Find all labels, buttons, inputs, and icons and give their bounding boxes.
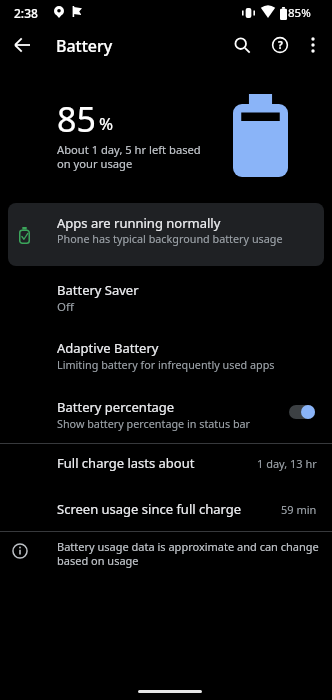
- button[interactable]: Battery Saver: [0, 270, 332, 326]
- staticText: 2:38: [14, 5, 38, 21]
- button[interactable]: [228, 31, 256, 59]
- staticText: Screen usage since full charge: [57, 500, 242, 518]
- staticText: Battery: [56, 35, 113, 57]
- staticText: 1 day, 13 hr: [257, 456, 317, 471]
- button[interactable]: Battery percentage: [0, 387, 332, 437]
- staticText: ?: [278, 38, 283, 52]
- button[interactable]: Full charge lasts about: [0, 447, 332, 489]
- button[interactable]: [289, 405, 315, 419]
- staticText: About 1 day, 5 hr left based: [57, 142, 201, 157]
- staticText: Full charge lasts about: [57, 454, 195, 472]
- button[interactable]: Adaptive Battery: [0, 328, 332, 384]
- staticText: Phone has typical background battery usa…: [57, 231, 283, 246]
- staticText: 85%: [288, 5, 311, 21]
- staticText: %: [99, 112, 114, 135]
- staticText: Off: [57, 299, 74, 315]
- staticText: on your usage: [57, 156, 133, 171]
- staticText: 59 min: [281, 502, 317, 517]
- staticText: Battery Saver: [57, 281, 139, 299]
- button[interactable]: Apps are running normally: [8, 203, 324, 266]
- staticText: Battery usage data is approximate and ca…: [57, 539, 319, 568]
- button[interactable]: Screen usage since full charge: [0, 493, 332, 535]
- staticText: Show battery percentage in status bar: [57, 416, 251, 431]
- staticText: 85: [57, 96, 96, 142]
- button[interactable]: [8, 31, 36, 59]
- button[interactable]: ?: [266, 31, 294, 59]
- staticText: Adaptive Battery: [57, 339, 159, 357]
- button[interactable]: [300, 31, 326, 59]
- staticText: Apps are running normally: [57, 214, 221, 232]
- staticText: Battery percentage: [57, 398, 175, 416]
- staticText: Limiting battery for infrequently used a…: [57, 357, 275, 372]
